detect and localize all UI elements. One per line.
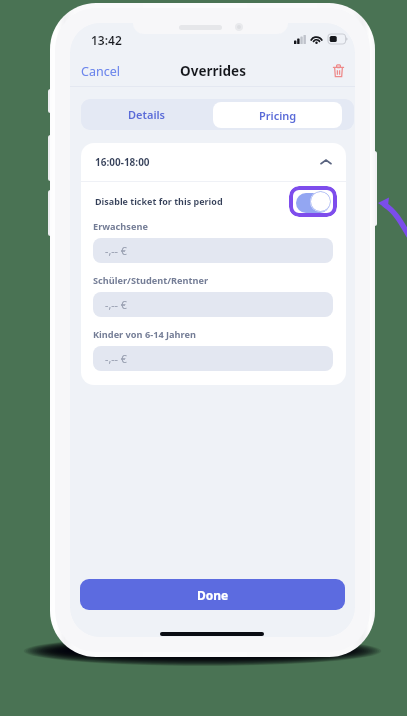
staticText: -,-- € <box>105 298 127 312</box>
staticText: 16:00-18:00 <box>95 155 150 169</box>
button[interactable]: 16:00-18:00 <box>81 143 346 181</box>
button[interactable]: Disable ticket for this period <box>81 182 346 220</box>
button[interactable]: Disable ticket for this period <box>289 186 337 217</box>
button[interactable]: Pricing <box>213 102 342 128</box>
button[interactable]: Details <box>81 99 213 130</box>
staticText: Kinder von 6-14 Jahren <box>93 328 196 341</box>
button[interactable]: Done <box>80 579 345 610</box>
staticText: Erwachsene <box>93 220 148 233</box>
button[interactable]: Cancel <box>70 56 132 87</box>
button[interactable]: -,-- € <box>93 346 333 371</box>
staticText: -,-- € <box>105 352 127 366</box>
staticText: Overrides <box>180 62 246 80</box>
staticText: Schüler/Student/Rentner <box>93 274 209 287</box>
staticText: Disable ticket for this period <box>95 195 223 207</box>
staticText: Details <box>128 107 166 122</box>
staticText: -,-- € <box>105 244 127 258</box>
staticText: Done <box>197 587 229 603</box>
staticText: Pricing <box>259 108 297 123</box>
staticText: Cancel <box>81 63 120 80</box>
button[interactable]: -,-- € <box>93 292 333 317</box>
button[interactable]: Delete <box>321 58 355 84</box>
button[interactable]: -,-- € <box>93 238 333 263</box>
staticText: 13:42 <box>91 32 122 48</box>
